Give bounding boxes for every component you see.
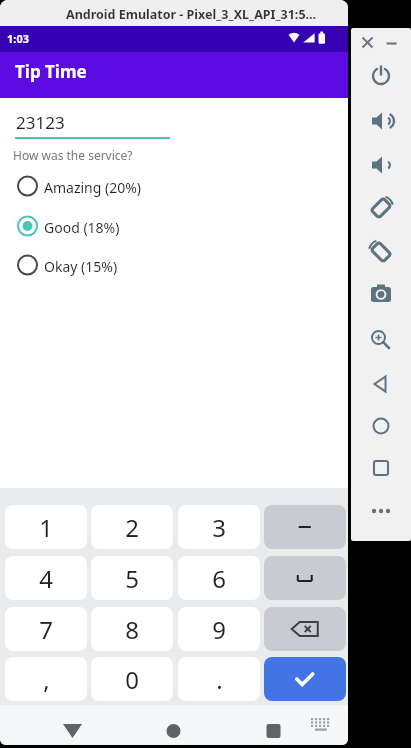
button[interactable]: Okay (15%): [8, 253, 208, 277]
staticText: Okay (15%): [44, 257, 118, 276]
button[interactable]: [264, 607, 346, 651]
button[interactable]: 23123: [15, 108, 171, 142]
staticText: 9: [212, 613, 226, 646]
button[interactable]: [56, 710, 90, 740]
button[interactable]: [366, 106, 396, 136]
button[interactable]: [366, 453, 396, 483]
button[interactable]: [366, 325, 396, 355]
button[interactable]: [366, 279, 396, 309]
button[interactable]: [305, 713, 337, 737]
button[interactable]: [366, 496, 396, 526]
button[interactable]: [264, 505, 346, 549]
button[interactable]: 2: [91, 505, 173, 549]
button[interactable]: [366, 411, 396, 441]
button[interactable]: 7: [5, 607, 87, 651]
button[interactable]: [380, 29, 405, 54]
button[interactable]: [366, 237, 396, 267]
button[interactable]: Good (18%): [8, 214, 208, 238]
staticText: 1:03: [7, 31, 29, 46]
button[interactable]: 0: [91, 657, 173, 701]
staticText: 6: [212, 562, 226, 595]
staticText: 2: [125, 511, 139, 544]
staticText: 3: [212, 511, 226, 544]
staticText: Good (18%): [44, 218, 120, 237]
staticText: 7: [39, 613, 53, 646]
button[interactable]: [366, 150, 396, 180]
button[interactable]: [264, 657, 346, 701]
button[interactable]: Amazing (20%): [8, 174, 208, 198]
staticText: Amazing (20%): [44, 178, 142, 197]
button[interactable]: [366, 61, 396, 91]
button[interactable]: 8: [91, 607, 173, 651]
button[interactable]: 6: [178, 556, 260, 600]
staticText: Tip Time: [15, 60, 87, 83]
staticText: 5: [125, 562, 139, 595]
staticText: 1: [39, 511, 53, 544]
button[interactable]: 5: [91, 556, 173, 600]
staticText: 8: [125, 613, 139, 646]
button[interactable]: .: [178, 657, 260, 701]
staticText: 0: [125, 663, 139, 696]
button[interactable]: 3: [178, 505, 260, 549]
button[interactable]: [157, 710, 191, 740]
button[interactable]: [257, 710, 291, 740]
button[interactable]: ,: [5, 657, 87, 701]
button[interactable]: [366, 193, 396, 223]
button[interactable]: [366, 369, 396, 399]
staticText: ,: [43, 663, 50, 696]
button[interactable]: [264, 556, 346, 600]
staticText: 4: [39, 562, 53, 595]
staticText: .: [216, 663, 223, 696]
button[interactable]: 1: [5, 505, 87, 549]
button[interactable]: 9: [178, 607, 260, 651]
button[interactable]: 4: [5, 556, 87, 600]
staticText: Android Emulator - Pixel_3_XL_API_31:5..…: [66, 6, 317, 23]
staticText: 23123: [16, 111, 65, 134]
button[interactable]: [355, 29, 380, 54]
staticText: How was the service?: [13, 147, 133, 163]
